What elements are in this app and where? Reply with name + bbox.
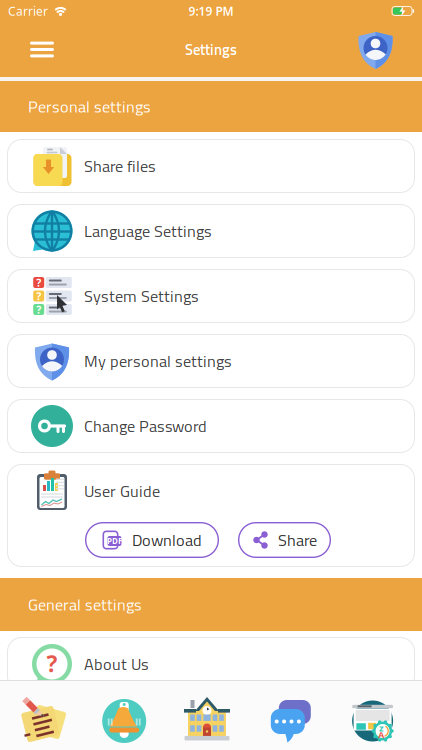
staticText: ? xyxy=(36,289,41,303)
staticText: Carrier xyxy=(8,3,48,19)
staticText: About Us xyxy=(84,652,149,676)
button[interactable]: ? xyxy=(7,637,415,691)
button[interactable]: Notifications xyxy=(83,698,166,744)
button[interactable]: My personal settings xyxy=(7,334,415,388)
button[interactable]: Menu xyxy=(30,36,54,63)
button[interactable]: Share xyxy=(238,522,331,558)
staticText: ? xyxy=(46,648,57,678)
button[interactable]: PDF xyxy=(85,522,219,558)
button[interactable]: Messages xyxy=(248,698,331,744)
staticText: ? xyxy=(36,275,41,290)
staticText: System Settings xyxy=(84,284,199,308)
button[interactable]: Language Settings xyxy=(7,204,415,258)
staticText: Change Password xyxy=(84,414,207,438)
button[interactable]: Notes xyxy=(0,698,83,744)
staticText: A xyxy=(378,728,384,741)
staticText: PDF xyxy=(107,536,122,546)
staticText: 9:19 PM xyxy=(188,3,233,19)
staticText: Language Settings xyxy=(84,219,212,243)
staticText: z xyxy=(379,722,384,734)
staticText: General settings xyxy=(28,592,142,617)
button[interactable]: Change Password xyxy=(7,399,415,453)
button[interactable]: School xyxy=(166,698,248,744)
button[interactable]: Share files xyxy=(7,139,415,193)
button[interactable]: Profile xyxy=(356,30,395,69)
staticText: My personal settings xyxy=(84,349,232,373)
staticText: Share files xyxy=(84,154,156,178)
button[interactable]: Courses xyxy=(331,698,414,744)
staticText: Settings xyxy=(185,38,237,61)
staticText: User Guide xyxy=(84,479,160,503)
staticText: Share xyxy=(278,528,317,552)
staticText: ? xyxy=(36,302,41,317)
button[interactable]: ? xyxy=(7,269,415,323)
staticText: Download xyxy=(132,528,202,552)
staticText: Personal settings xyxy=(28,94,151,119)
